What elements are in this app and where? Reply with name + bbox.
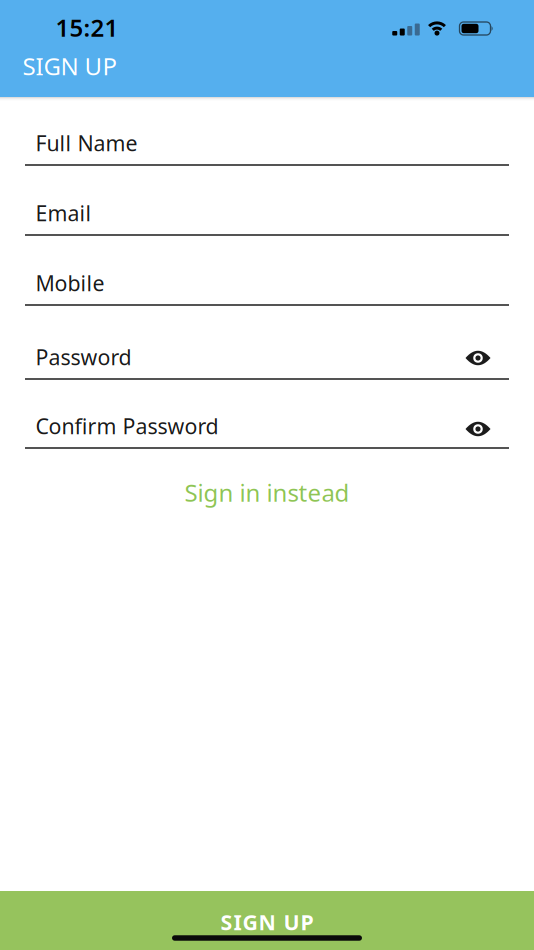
button[interactable]: Sign in instead [184, 477, 349, 508]
staticText: SIGN UP [22, 50, 117, 82]
staticText: Confirm Password [35, 412, 218, 440]
staticText: Email [35, 199, 91, 227]
button[interactable]: Show confirm password [465, 422, 490, 436]
staticText: Sign in instead [184, 477, 349, 508]
button[interactable]: Show password [465, 351, 490, 365]
staticText: 15:21 [55, 12, 118, 43]
button[interactable]: SIGN UP [0, 891, 534, 950]
staticText: Mobile [35, 269, 104, 297]
staticText: Full Name [35, 129, 137, 157]
staticText: SIGN UP [220, 908, 313, 936]
staticText: Password [35, 343, 131, 371]
